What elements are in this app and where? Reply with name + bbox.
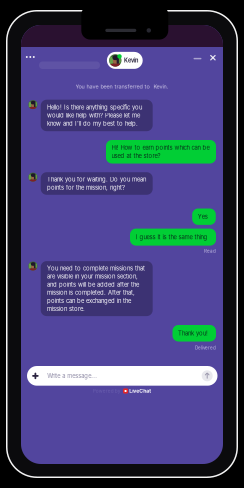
button[interactable]: More options — [21, 49, 39, 64]
staticText: Hello! Is there anything specific you wo… — [47, 104, 142, 127]
staticText: Read — [204, 248, 216, 254]
staticText: Thank you! — [178, 330, 208, 337]
staticText: You have been transferred to Kevin. — [75, 83, 168, 90]
staticText: LiveChat — [129, 388, 151, 394]
staticText: Kevin — [124, 57, 138, 64]
staticText: Powered by — [93, 388, 121, 394]
button[interactable]: Minimize — [190, 51, 205, 66]
staticText: I guess it is the same thing — [136, 234, 208, 241]
button[interactable]: Close chat — [205, 50, 220, 65]
button[interactable]: Send message — [200, 368, 215, 383]
staticText: Yes — [198, 213, 208, 220]
button[interactable]: Add attachment — [28, 368, 43, 383]
button[interactable]: Kevin — [107, 52, 143, 69]
staticText: Hi! How to earn points which can be used… — [112, 144, 210, 159]
staticText: Delivered — [195, 345, 216, 351]
staticText: You need to complete missions that are v… — [47, 265, 145, 312]
staticText: Write a message... — [47, 372, 97, 379]
staticText: Thank you for waiting. Do you mean point… — [47, 176, 146, 191]
